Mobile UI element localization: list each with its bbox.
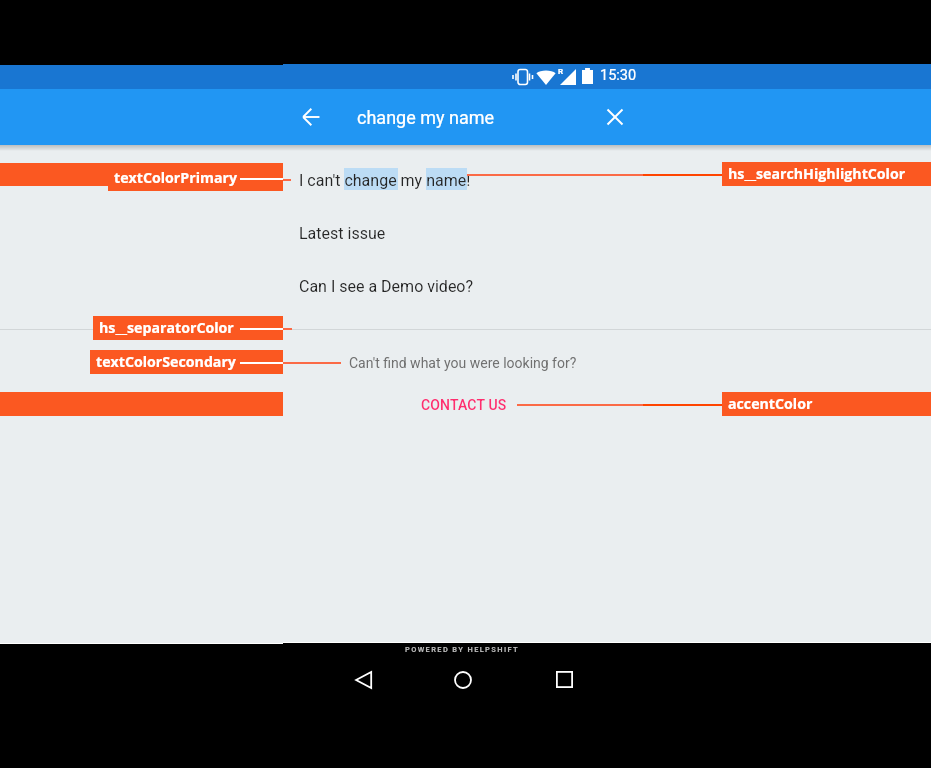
button[interactable]: Can I see a Demo video? xyxy=(0,261,931,314)
staticText: hs__separatorColor xyxy=(99,318,234,337)
staticText: hs__searchHighlightColor xyxy=(728,164,906,183)
staticText: textColorSecondary xyxy=(96,352,236,371)
button[interactable]: Latest issue xyxy=(0,208,931,261)
button[interactable]: Clear search xyxy=(595,97,635,137)
button[interactable]: I can't change my name! xyxy=(0,155,931,208)
staticText: I can't change my name! xyxy=(299,171,471,190)
staticText: Can I see a Demo video? xyxy=(299,277,474,296)
staticText: change my name xyxy=(357,107,495,128)
button[interactable]: Back xyxy=(344,660,384,700)
button[interactable]: Home xyxy=(443,660,483,700)
staticText: accentColor xyxy=(728,394,813,413)
staticText: POWERED BY HELPSHIFT xyxy=(405,645,519,654)
staticText: R xyxy=(558,67,564,76)
staticText: 15:30 xyxy=(600,67,637,84)
staticText: Can't find what you were looking for? xyxy=(349,355,577,371)
staticText: CONTACT US xyxy=(421,397,507,413)
button[interactable]: CONTACT US xyxy=(401,389,527,421)
staticText: Latest issue xyxy=(299,224,386,243)
staticText: textColorPrimary xyxy=(114,168,237,187)
button[interactable]: Recents xyxy=(544,659,584,699)
button[interactable]: Back xyxy=(291,97,331,137)
